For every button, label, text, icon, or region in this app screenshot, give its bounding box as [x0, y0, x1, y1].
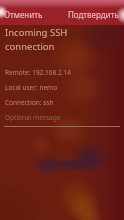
staticText: Incoming SSH connection — [5, 26, 68, 53]
staticText: Local user: nemo — [5, 83, 58, 92]
staticText: Отменить — [4, 9, 43, 20]
button[interactable]: Optional message — [0, 113, 124, 127]
button[interactable]: Отменить — [4, 9, 43, 20]
button[interactable]: Подтвердить — [68, 9, 119, 20]
staticText: Подтвердить — [68, 9, 119, 20]
staticText: Remote: 192.168.2.14 — [5, 68, 71, 77]
staticText: Connection: ssh — [5, 98, 54, 107]
staticText: Optional message — [5, 113, 61, 122]
